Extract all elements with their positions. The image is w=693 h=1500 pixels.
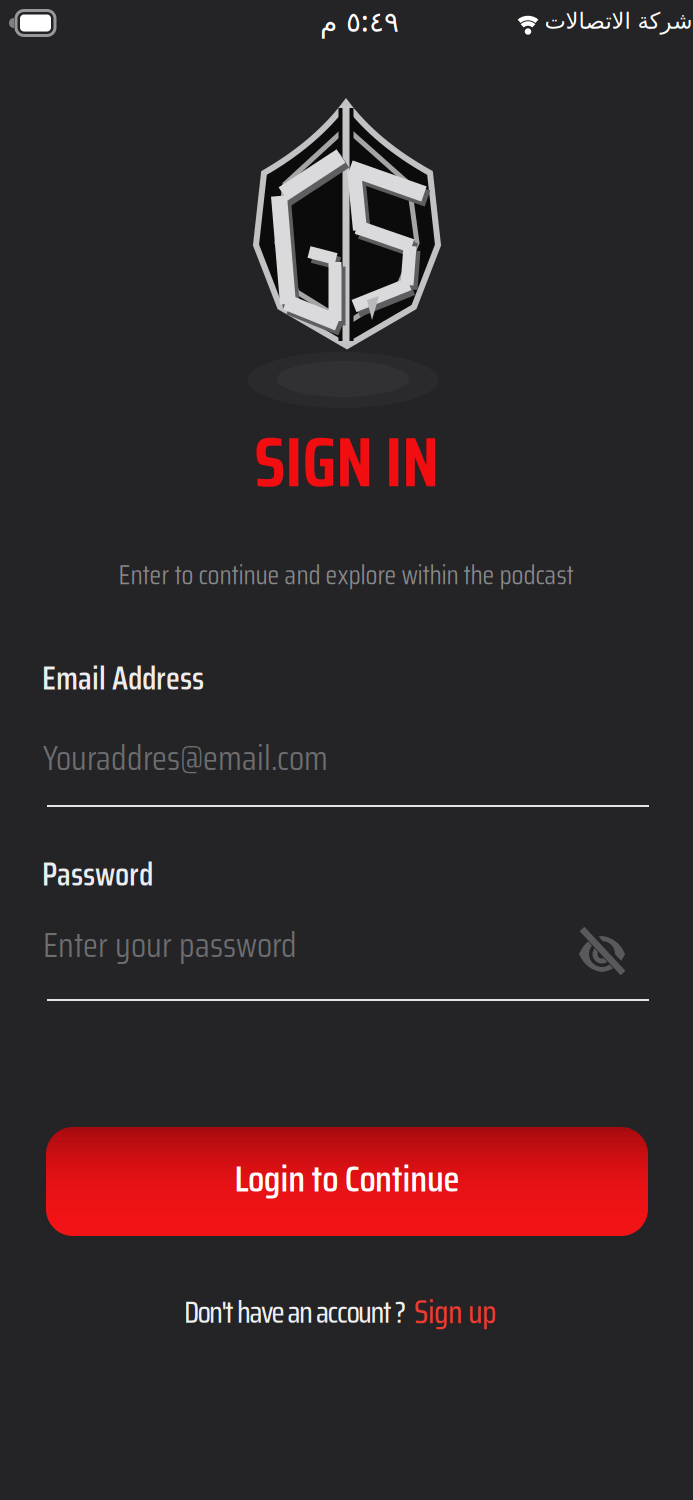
staticText: Enter your password [43, 918, 297, 972]
staticText: Don't have an account ? [184, 1288, 406, 1336]
staticText: SIGN IN [254, 407, 438, 516]
button[interactable]: Password [47, 917, 649, 1001]
staticText: Email Address [42, 653, 204, 704]
staticText: شركة الاتصالات [544, 8, 692, 34]
staticText: Enter to continue and explore within the… [118, 554, 573, 596]
button[interactable]: Email Address [47, 730, 649, 807]
staticText: Password [42, 849, 153, 900]
staticText: ٥:٤٩ م [319, 2, 398, 40]
button[interactable]: Sign up [414, 1287, 496, 1337]
staticText: Youraddres@email.com [43, 731, 328, 785]
button[interactable]: Show password [575, 927, 629, 981]
button[interactable]: Login to Continue [46, 1127, 648, 1236]
staticText: Sign up [414, 1287, 496, 1337]
staticText: Login to Continue [234, 1149, 460, 1208]
